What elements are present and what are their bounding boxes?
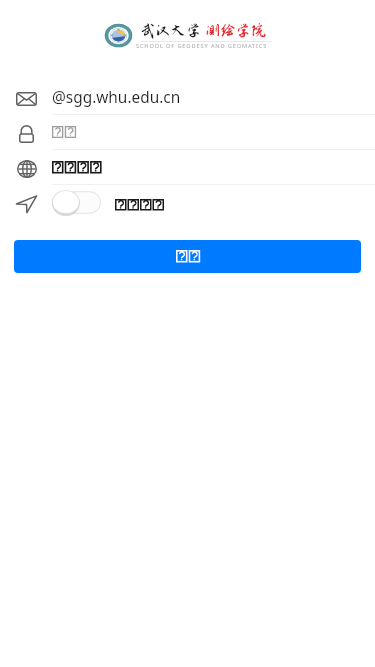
staticText: 武汉大学 bbox=[140, 22, 202, 39]
button[interactable]: Remember me bbox=[0, 185, 375, 220]
button[interactable]: Toggle remember me bbox=[52, 190, 102, 215]
staticText: 测绘学院 bbox=[205, 22, 267, 39]
staticText: @sgg.whu.edu.cn bbox=[52, 87, 181, 108]
button[interactable]: Log in bbox=[14, 240, 361, 273]
button[interactable]: Email address bbox=[0, 80, 375, 114]
button[interactable]: Server address bbox=[0, 150, 375, 184]
button[interactable]: Password bbox=[0, 115, 375, 149]
staticText: SCHOOL OF GEODESY AND GEOMATICS bbox=[136, 42, 268, 50]
other: Location bbox=[16, 195, 37, 213]
